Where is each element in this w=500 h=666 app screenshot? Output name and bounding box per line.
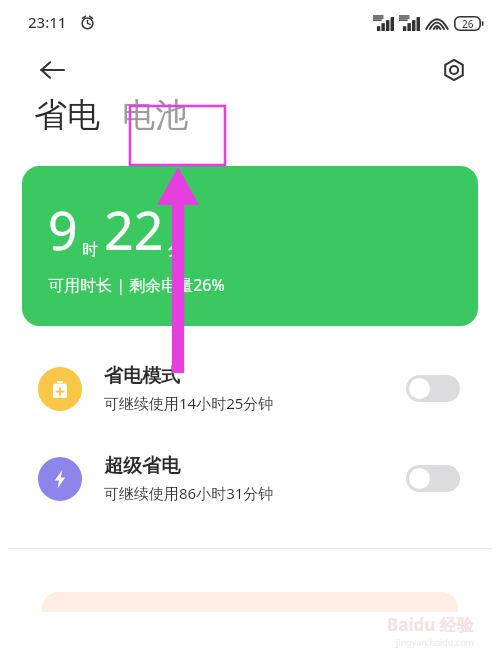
staticText: 时 — [82, 240, 98, 260]
staticText: jingyan.baidu.com — [396, 636, 474, 648]
staticText: 23:11 — [28, 12, 67, 32]
staticText: Baidu 经验 — [387, 613, 474, 636]
button[interactable]: 电池 — [122, 94, 188, 136]
button[interactable]: Back — [30, 48, 74, 92]
button[interactable]: Toggle, off — [406, 465, 460, 492]
staticText: 可继续使用86小时31分钟 — [104, 483, 274, 503]
staticText: 省电模式 — [104, 364, 180, 388]
staticText: 电池 — [122, 94, 188, 136]
staticText: 分 — [168, 240, 184, 260]
button[interactable]: 省电模式 — [0, 364, 500, 413]
staticText: 9 — [48, 194, 78, 265]
button[interactable]: 超级省电 — [0, 454, 500, 503]
staticText: 22 — [104, 194, 164, 265]
button[interactable]: 省电 — [34, 94, 100, 136]
button[interactable]: Settings — [432, 48, 476, 92]
button[interactable]: Toggle, off — [406, 375, 460, 402]
staticText: 26 — [462, 17, 474, 31]
staticText: 省电 — [34, 94, 100, 136]
button[interactable]: 9 — [22, 166, 478, 326]
staticText: 可用时长 | 剩余电量26% — [48, 274, 225, 296]
staticText: 超级省电 — [104, 454, 180, 478]
staticText: 可继续使用14小时25分钟 — [104, 393, 274, 413]
